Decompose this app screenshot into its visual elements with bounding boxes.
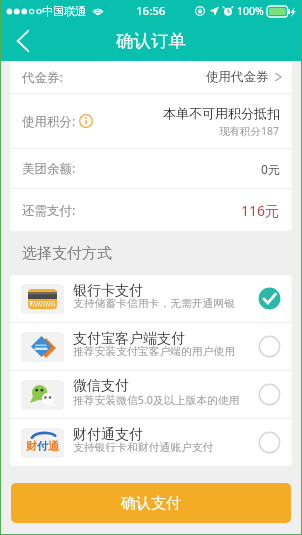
staticText: 确认订单: [116, 30, 186, 52]
staticText: 中国联通: [42, 4, 86, 18]
staticText: 100%: [237, 4, 264, 18]
staticText: 推荐安装微信5.0及以上版本的使用: [73, 392, 240, 407]
button[interactable]: 财: [10, 419, 292, 466]
staticText: 支持银行卡和财付通账户支付: [73, 441, 214, 455]
staticText: 美团余额:: [22, 160, 76, 177]
button[interactable]: 美团余额:: [10, 149, 292, 188]
button[interactable]: 微信支付: [10, 371, 292, 418]
staticText: 确认支付: [121, 494, 181, 513]
staticText: 本单不可用积分抵扣: [163, 105, 280, 121]
staticText: 银行卡支付: [73, 282, 143, 300]
staticText: 推荐安装支付宝客户端的用户使用: [73, 345, 235, 359]
staticText: 选择支付方式: [22, 244, 112, 263]
staticText: 16:56: [136, 3, 166, 19]
staticText: 0元: [261, 161, 280, 177]
staticText: 使用代金券: [206, 69, 269, 85]
button[interactable]: 使用积分:: [10, 94, 292, 148]
staticText: 还需支付:: [22, 202, 76, 219]
staticText: 通: [48, 439, 59, 453]
button[interactable]: 确认支付: [11, 483, 291, 523]
staticText: 代金券:: [22, 69, 63, 86]
staticText: 现有积分187: [219, 124, 280, 138]
button[interactable]: 支付宝客户端支付: [10, 323, 292, 370]
button[interactable]: 返回: [0, 21, 46, 61]
staticText: 付: [37, 439, 48, 453]
staticText: 微信支付: [73, 377, 129, 395]
button[interactable]: 代金券:: [10, 61, 292, 93]
staticText: 财: [26, 439, 37, 453]
button[interactable]: 银行卡支付: [10, 275, 292, 322]
staticText: 财付通支付: [73, 426, 143, 444]
staticText: 支付宝客户端支付: [73, 330, 185, 348]
button[interactable]: 还需支付:: [10, 189, 292, 231]
staticText: 支持储蓄卡信用卡，无需开通网银: [73, 297, 235, 311]
staticText: 116元: [241, 201, 280, 220]
staticText: 使用积分:: [22, 113, 76, 130]
